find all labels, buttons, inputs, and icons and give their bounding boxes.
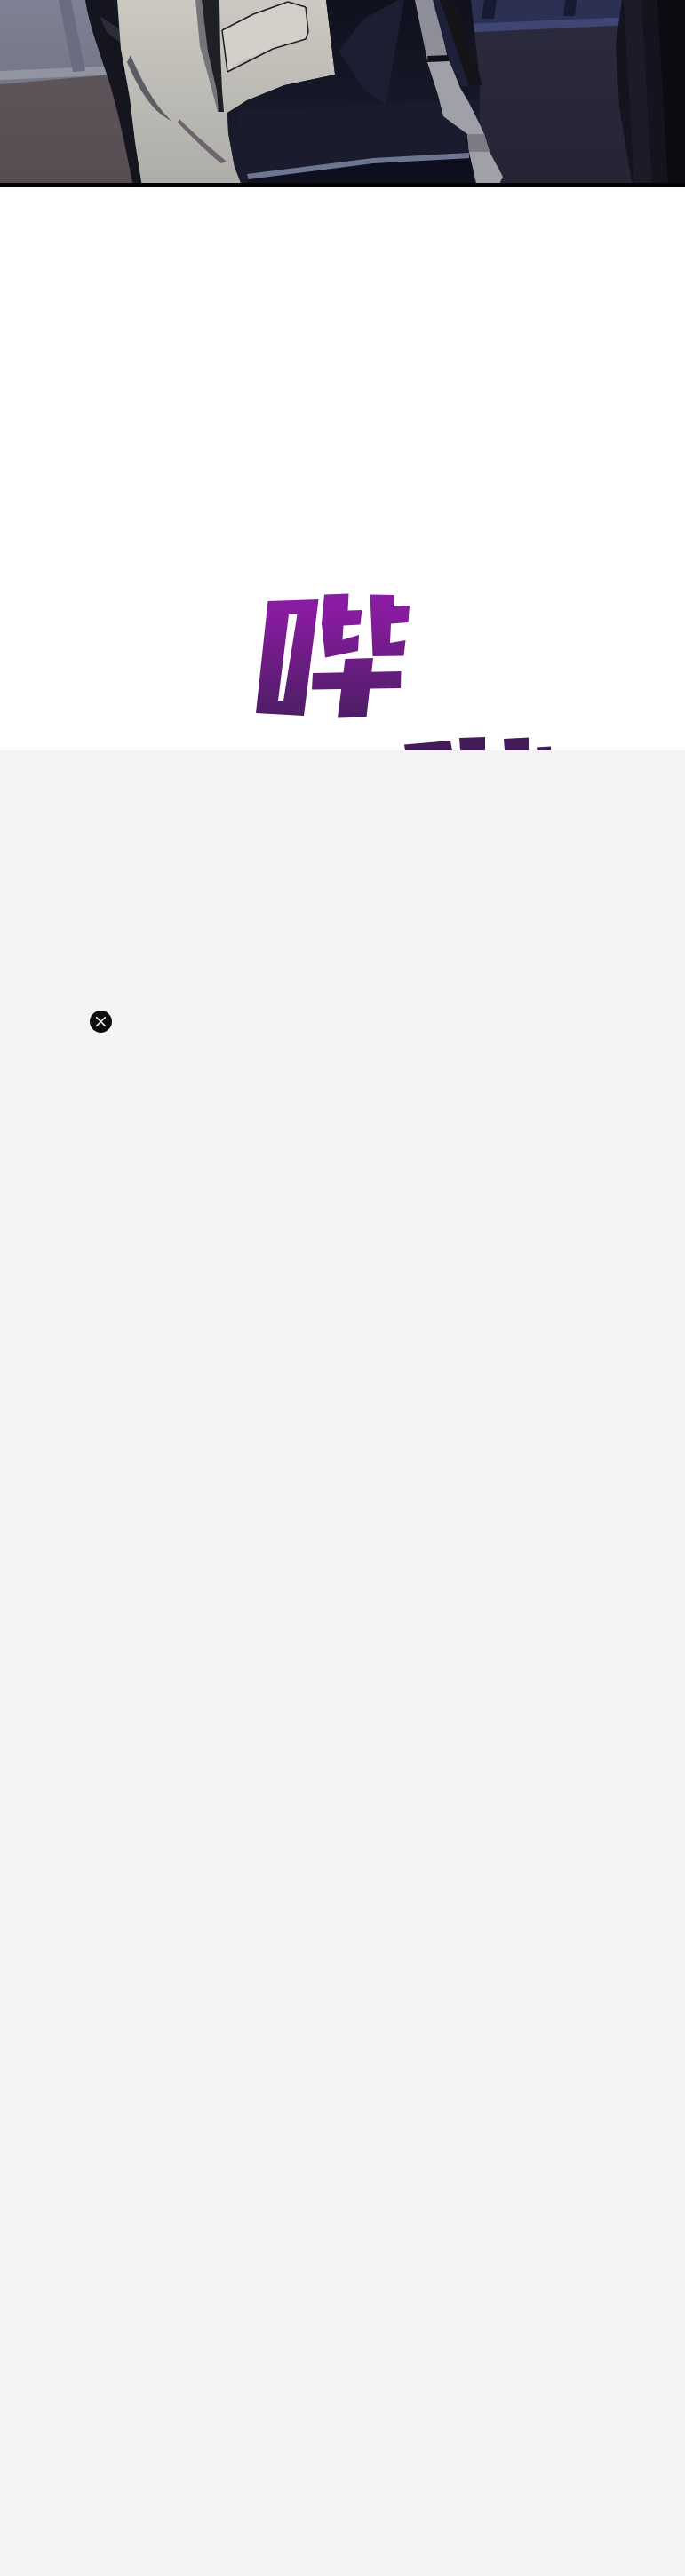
button[interactable]: Close advertisement [90,1011,112,1033]
button[interactable]: Comic page artwork [0,0,685,187]
